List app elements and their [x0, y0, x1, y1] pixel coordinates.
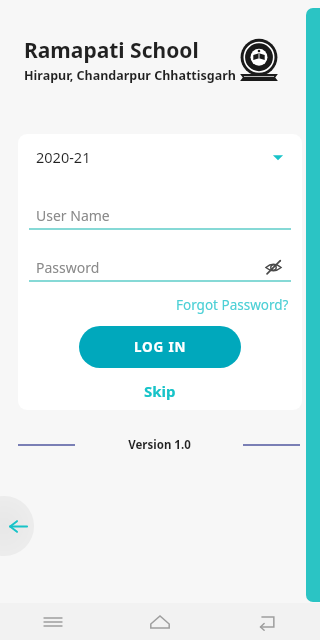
button[interactable]: Recents — [0, 603, 106, 640]
button[interactable]: Password — [29, 254, 291, 282]
staticText: 2020-21 — [36, 147, 91, 167]
button[interactable]: 2020-21 — [18, 134, 302, 180]
staticText: Password — [36, 258, 100, 277]
staticText: Hirapur, Chandarpur Chhattisgarh — [24, 67, 236, 84]
button[interactable]: User Name — [29, 202, 291, 230]
button[interactable]: Forgot Password? — [174, 294, 291, 316]
button[interactable]: LOG IN — [79, 326, 241, 368]
staticText: User Name — [36, 206, 110, 225]
button[interactable]: Home — [106, 603, 213, 640]
staticText: Skip — [144, 381, 176, 401]
staticText: Version 1.0 — [128, 437, 191, 453]
staticText: Forgot Password? — [176, 296, 289, 314]
staticText: LOG IN — [134, 338, 187, 356]
button[interactable]: Back — [213, 603, 320, 640]
staticText: Ramapati School — [24, 36, 199, 65]
button[interactable]: Back — [3, 511, 33, 541]
button[interactable]: Show password — [262, 256, 284, 278]
button[interactable]: Skip — [134, 378, 186, 404]
